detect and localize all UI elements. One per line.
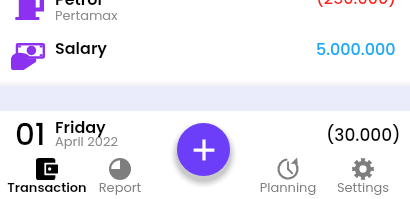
staticText: Transaction xyxy=(2,178,92,196)
staticText: April 2022 xyxy=(55,132,118,150)
staticText: Friday xyxy=(55,116,106,138)
staticText: Settings xyxy=(318,178,408,196)
button[interactable]: Planning xyxy=(243,158,333,199)
button[interactable]: Transaction xyxy=(2,158,92,199)
staticText: Salary xyxy=(55,37,108,59)
staticText: Planning xyxy=(243,178,333,196)
staticText: 01 xyxy=(15,112,46,155)
staticText: (30.000) xyxy=(326,123,401,147)
button[interactable]: Settings xyxy=(318,158,408,199)
staticText: Report xyxy=(75,178,165,196)
button[interactable]: Petrol xyxy=(0,0,410,22)
staticText: Pertamax xyxy=(55,6,118,24)
staticText: Petrol xyxy=(55,0,102,10)
button[interactable]: Salary xyxy=(0,40,410,76)
button[interactable]: Report xyxy=(75,158,165,199)
staticText: (250.000) xyxy=(316,0,397,9)
staticText: 5.000.000 xyxy=(316,38,396,60)
button[interactable]: Add transaction xyxy=(177,123,230,176)
